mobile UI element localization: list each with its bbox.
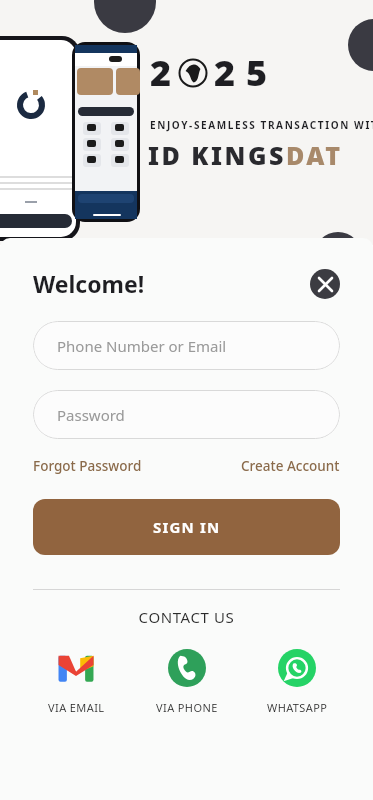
staticText: SIGN IN bbox=[153, 517, 221, 537]
button[interactable]: SIGN IN bbox=[33, 499, 340, 555]
staticText: ID KINGS bbox=[148, 138, 286, 172]
button[interactable]: Close bbox=[310, 269, 340, 299]
staticText: 2 bbox=[214, 48, 236, 97]
button[interactable]: Email via Gmail bbox=[33, 649, 119, 715]
staticText: 5 bbox=[246, 48, 268, 97]
staticText: VIA EMAIL bbox=[48, 700, 105, 715]
button[interactable]: Call us bbox=[144, 649, 230, 715]
staticText: 2 bbox=[150, 48, 172, 97]
button[interactable]: Forgot Password bbox=[33, 455, 142, 477]
staticText: ENJOY-SEAMLESS TRANSACTION WITH bbox=[150, 118, 373, 132]
button[interactable]: Phone Number or Email bbox=[33, 321, 340, 370]
staticText: Phone Number or Email bbox=[57, 336, 227, 356]
staticText: Forgot Password bbox=[33, 457, 142, 475]
staticText: Password bbox=[57, 405, 125, 425]
staticText: CONTACT US bbox=[33, 607, 340, 627]
button[interactable]: Create Account bbox=[241, 455, 340, 477]
staticText: DAT bbox=[286, 138, 343, 172]
staticText: WHATSAPP bbox=[267, 700, 328, 715]
staticText: Welcome! bbox=[33, 268, 145, 299]
staticText: Create Account bbox=[241, 457, 340, 475]
staticText: VIA PHONE bbox=[156, 700, 218, 715]
button[interactable]: Chat on WhatsApp bbox=[254, 649, 340, 715]
button[interactable]: Password bbox=[33, 390, 340, 439]
